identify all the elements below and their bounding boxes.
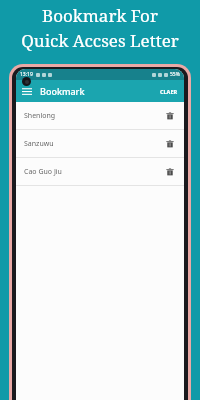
staticText: CLAER	[160, 88, 178, 95]
button[interactable]: Delete Cao Guo Jiu	[162, 164, 178, 180]
button[interactable]: Open navigation menu	[19, 83, 35, 99]
button[interactable]: Delete Shenlong	[162, 108, 178, 124]
staticText: 13:19	[20, 71, 33, 78]
staticText: Shenlong	[24, 111, 56, 121]
button[interactable]: CLAER	[158, 85, 180, 98]
button[interactable]: Delete Sanzuwu	[162, 136, 178, 152]
staticText: Bookmark For	[42, 4, 158, 27]
button[interactable]: Shenlong	[16, 102, 184, 129]
staticText: Bookmark	[40, 85, 85, 97]
staticText: 55%	[170, 71, 180, 78]
button[interactable]: Sanzuwu	[16, 130, 184, 157]
staticText: Cao Guo Jiu	[24, 167, 62, 177]
button[interactable]: Cao Guo Jiu	[16, 158, 184, 185]
staticText: Sanzuwu	[24, 139, 54, 149]
staticText: Quick Accses Letter	[21, 29, 179, 52]
